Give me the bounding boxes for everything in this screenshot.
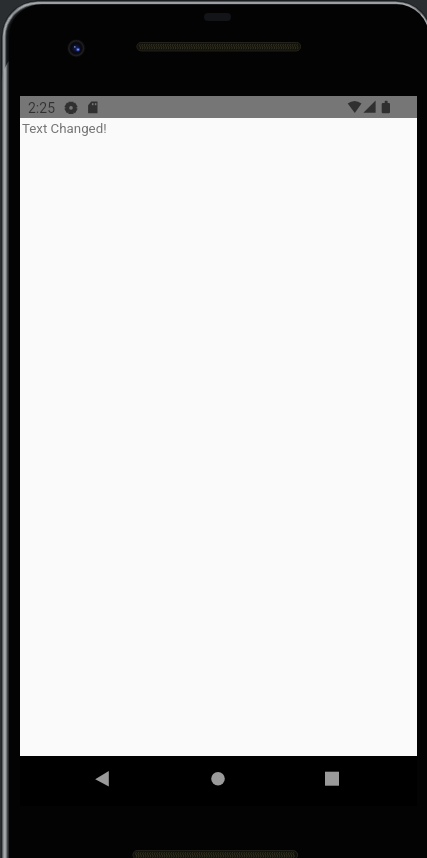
button[interactable]: Recent apps [320, 764, 344, 794]
staticText: Text Changed! [22, 121, 107, 137]
button[interactable]: Home [206, 764, 230, 794]
button[interactable]: Back [90, 764, 114, 794]
staticText: 2:25 [28, 100, 55, 116]
